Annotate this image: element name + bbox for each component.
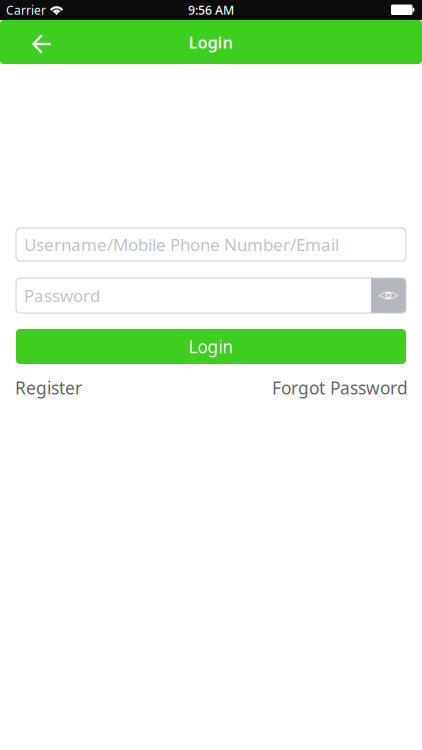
staticText: Forgot Password: [272, 376, 408, 400]
staticText: Carrier: [6, 2, 46, 18]
button[interactable]: Forgot Password: [272, 376, 408, 400]
staticText: Username/Mobile Phone Number/Email: [24, 233, 339, 256]
staticText: Login: [188, 335, 233, 358]
staticText: 9:56 AM: [188, 2, 234, 18]
staticText: Password: [24, 284, 100, 307]
button[interactable]: Show password: [371, 278, 406, 313]
staticText: Register: [15, 376, 82, 400]
staticText: Login: [188, 31, 233, 53]
button[interactable]: Login: [16, 329, 406, 364]
button[interactable]: Register: [15, 376, 82, 400]
button[interactable]: Back: [20, 20, 64, 64]
